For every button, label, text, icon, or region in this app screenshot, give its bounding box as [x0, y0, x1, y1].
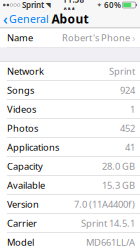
button[interactable]: Carrier: [0, 214, 140, 233]
button[interactable]: Photos: [0, 119, 140, 138]
staticText: 41: [125, 141, 135, 153]
staticText: Model: [7, 236, 34, 248]
staticText: Songs: [7, 84, 34, 96]
staticText: 15.3 GB: [102, 179, 135, 191]
staticText: Carrier: [7, 217, 37, 229]
staticText: Sprint 14.5.1: [81, 217, 135, 229]
button[interactable]: Applications: [0, 138, 140, 157]
staticText: Network: [7, 65, 44, 77]
button[interactable]: Songs: [0, 81, 140, 100]
staticText: 452: [120, 122, 135, 134]
staticText: Photos: [7, 122, 38, 134]
staticText: Sprint: [22, 0, 44, 10]
staticText: ✦: [96, 1, 102, 9]
staticText: General: [9, 12, 49, 26]
button[interactable]: Model: [0, 233, 140, 250]
staticText: 924: [120, 84, 135, 96]
button[interactable]: Available: [0, 176, 140, 195]
staticText: 7.0 (11A4400f): [74, 198, 135, 210]
staticText: Robert's Phone: [62, 32, 130, 44]
staticText: 28.0 GB: [102, 160, 135, 172]
staticText: Capacity: [7, 160, 43, 172]
staticText: Name: [7, 32, 33, 44]
staticText: Available: [7, 179, 45, 191]
staticText: Applications: [7, 141, 59, 153]
staticText: Version: [7, 198, 39, 210]
staticText: 11:38 AM: [62, 0, 84, 16]
staticText: Videos: [7, 103, 36, 115]
button[interactable]: Network: [0, 62, 140, 81]
staticText: ◥: [45, 1, 50, 9]
button[interactable]: Version: [0, 195, 140, 214]
button[interactable]: ‹: [0, 7, 49, 30]
staticText: 1: [130, 103, 135, 115]
staticText: MD661LL/A: [86, 236, 135, 248]
button[interactable]: Capacity: [0, 157, 140, 176]
button[interactable]: Name: [0, 28, 140, 47]
staticText: Sprint: [109, 65, 135, 77]
staticText: About: [51, 11, 88, 27]
staticText: ‹: [3, 9, 8, 28]
staticText: 60%: [104, 0, 121, 10]
button[interactable]: Videos: [0, 100, 140, 119]
staticText: ›: [132, 31, 135, 45]
